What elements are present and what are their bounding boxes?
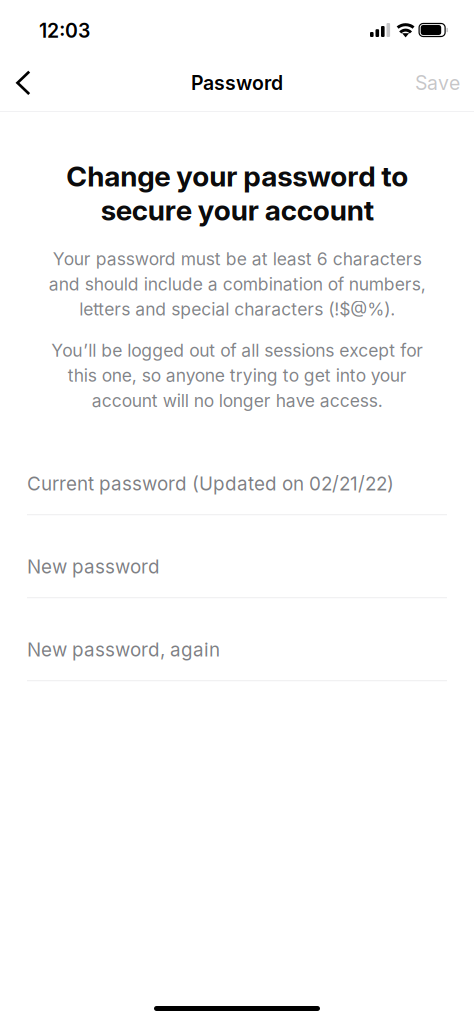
staticText: Password [191,71,283,95]
button[interactable]: Back [0,55,53,111]
staticText: Your password must be at least 6 charact… [48,248,425,320]
staticText: Save [415,71,460,95]
button[interactable]: New password [27,515,447,598]
button[interactable]: Save [393,55,474,111]
staticText: 12:03 [39,19,90,43]
staticText: New password, again [27,638,220,661]
staticText: You’ll be logged out of all sessions exc… [51,340,423,411]
staticText: Current password (Updated on 02/21/22) [27,472,394,495]
button[interactable]: New password, again [27,598,447,681]
staticText: New password [27,555,160,578]
button[interactable]: Current password (Updated on 02/21/22) [27,432,447,515]
staticText: Change your password to secure your acco… [66,159,408,227]
